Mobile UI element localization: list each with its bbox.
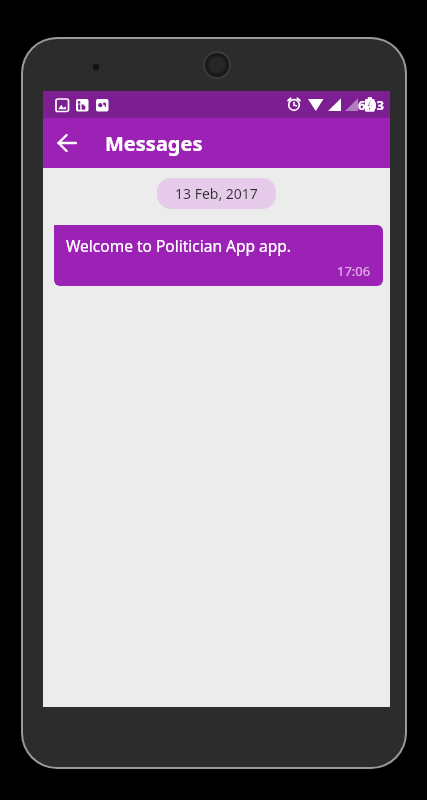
staticText: 13 Feb, 2017 bbox=[175, 184, 258, 203]
button[interactable]: Welcome to Politician App app. bbox=[54, 225, 383, 286]
button[interactable]: 13 Feb, 2017 bbox=[157, 178, 276, 209]
button[interactable]: Back bbox=[43, 119, 91, 167]
staticText: 6:03 bbox=[358, 96, 384, 114]
staticText: Welcome to Politician App app. bbox=[66, 235, 291, 256]
staticText: 17:06 bbox=[337, 262, 371, 280]
staticText: Messages bbox=[105, 130, 203, 157]
